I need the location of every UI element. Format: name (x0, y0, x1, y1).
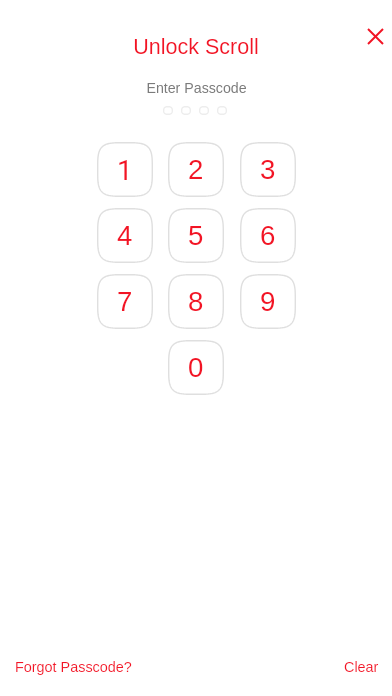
staticText: Unlock Scroll (133, 35, 259, 59)
staticText: 2 (188, 154, 204, 185)
button[interactable]: 0 (168, 340, 224, 395)
button[interactable]: Close (351, 12, 392, 60)
staticText: Enter Passcode (146, 80, 247, 96)
button[interactable]: 3 (240, 142, 296, 197)
button[interactable]: 2 (168, 142, 224, 197)
button[interactable]: Clear (344, 659, 379, 675)
staticText: 7 (117, 286, 133, 317)
button[interactable]: 4 (97, 208, 153, 263)
staticText: 3 (260, 154, 276, 185)
staticText: Forgot Passcode? (15, 659, 132, 675)
button[interactable]: 1 (97, 142, 153, 197)
button[interactable]: 8 (168, 274, 224, 329)
staticText: 8 (188, 286, 204, 317)
button[interactable]: Forgot Passcode? (15, 659, 132, 675)
button[interactable]: 9 (240, 274, 296, 329)
staticText: Clear (344, 659, 379, 675)
staticText: 5 (188, 220, 204, 251)
staticText: 0 (188, 352, 204, 383)
staticText: 4 (117, 220, 133, 251)
button[interactable]: 7 (97, 274, 153, 329)
button[interactable]: 6 (240, 208, 296, 263)
button[interactable]: 5 (168, 208, 224, 263)
staticText: 9 (260, 286, 276, 317)
staticText: 6 (260, 220, 276, 251)
staticText: 1 (117, 154, 133, 186)
